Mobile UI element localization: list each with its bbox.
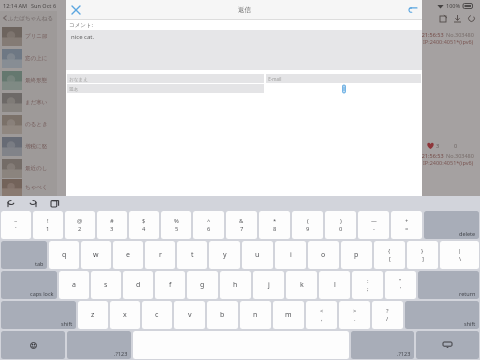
button[interactable]: 最終形態 <box>0 69 57 91</box>
button[interactable]: y <box>209 241 240 269</box>
button[interactable]: < <box>306 301 337 329</box>
button[interactable]: h <box>220 271 251 299</box>
button[interactable]: d <box>123 271 153 299</box>
button[interactable]: tab <box>1 241 47 269</box>
button[interactable]: e <box>113 241 143 269</box>
button[interactable]: u <box>242 241 273 269</box>
button[interactable]: Download <box>450 11 464 25</box>
staticText: ^ <box>207 217 211 225</box>
staticText: . <box>354 315 356 323</box>
button[interactable]: r <box>145 241 175 269</box>
button[interactable]: w <box>81 241 111 269</box>
button[interactable]: g <box>187 271 218 299</box>
button[interactable]: ちゃべく <box>0 179 57 196</box>
button[interactable]: 增税に怒 <box>0 135 57 157</box>
button[interactable]: & <box>226 211 257 239</box>
button[interactable]: Emoji <box>1 331 65 359</box>
button[interactable]: ? <box>372 301 403 329</box>
button[interactable]: b <box>207 301 238 329</box>
button[interactable]: ^ <box>193 211 224 239</box>
button[interactable]: o <box>308 241 339 269</box>
button[interactable]: Redo <box>22 196 44 210</box>
button[interactable]: t <box>177 241 207 269</box>
button[interactable]: shift <box>405 301 479 329</box>
staticText: * <box>273 217 277 225</box>
staticText: | <box>458 247 462 255</box>
button[interactable]: } <box>407 241 438 269</box>
button[interactable]: Refresh <box>464 11 478 25</box>
button[interactable]: Undo <box>0 196 22 210</box>
button[interactable]: | <box>440 241 479 269</box>
button[interactable]: まだ寒い <box>0 91 57 113</box>
button[interactable]: q <box>49 241 79 269</box>
button[interactable]: のるとき <box>0 113 57 135</box>
staticText: ふたばちゃんねる <box>8 15 54 22</box>
button[interactable]: プリニ節 <box>0 25 57 47</box>
staticText: まだ寒い <box>25 99 48 106</box>
button[interactable]: l <box>319 271 350 299</box>
button[interactable]: : <box>352 271 383 299</box>
button[interactable]: @ <box>65 211 95 239</box>
button[interactable]: % <box>161 211 191 239</box>
button[interactable]: Paste <box>44 196 66 210</box>
button[interactable]: v <box>174 301 205 329</box>
staticText: ) <box>340 217 342 225</box>
staticText: c <box>155 310 159 320</box>
button[interactable]: Close <box>66 0 86 20</box>
button[interactable]: return <box>418 271 479 299</box>
staticText: No.303480 <box>446 152 474 159</box>
staticText: 04 21:56:53 <box>414 152 444 159</box>
button[interactable]: s <box>91 271 121 299</box>
button[interactable]: 最近のし <box>0 157 57 179</box>
button[interactable]: f <box>155 271 185 299</box>
button[interactable]: z <box>78 301 108 329</box>
button[interactable]: 窓の上に <box>0 47 57 69</box>
button[interactable]: caps lock <box>1 271 57 299</box>
button[interactable]: + <box>391 211 422 239</box>
button[interactable]: Send <box>402 0 422 20</box>
button[interactable]: i <box>275 241 306 269</box>
button[interactable]: おなまえ <box>67 74 264 83</box>
button[interactable]: { <box>374 241 405 269</box>
staticText: 題名 <box>67 86 79 92</box>
button[interactable]: ! <box>33 211 63 239</box>
button[interactable]: a <box>59 271 89 299</box>
button[interactable]: ) <box>325 211 356 239</box>
button[interactable]: $ <box>129 211 159 239</box>
button[interactable]: ( <box>292 211 323 239</box>
staticText: 窓の上に <box>25 55 48 62</box>
staticText: ] <box>422 255 424 263</box>
button[interactable]: # <box>97 211 127 239</box>
staticText: d <box>136 280 141 290</box>
button[interactable]: " <box>385 271 416 299</box>
button[interactable]: j <box>253 271 284 299</box>
button[interactable]: Compose <box>436 11 450 25</box>
staticText: のるとき <box>25 121 48 128</box>
button[interactable]: .?123 <box>67 331 131 359</box>
button[interactable]: * <box>259 211 290 239</box>
button[interactable]: Hide keyboard <box>416 331 479 359</box>
button[interactable]: ~ <box>1 211 31 239</box>
button[interactable]: m <box>273 301 304 329</box>
staticText: / <box>386 315 389 323</box>
staticText: 最終形態 <box>25 77 47 84</box>
button[interactable]: k <box>286 271 317 299</box>
button[interactable]: shift <box>1 301 76 329</box>
button[interactable]: E-mail <box>266 74 421 83</box>
staticText: nice cat. <box>71 33 95 41</box>
button[interactable]: > <box>339 301 370 329</box>
button[interactable]: delete <box>424 211 479 239</box>
button[interactable]: p <box>341 241 372 269</box>
button[interactable]: Attach file <box>339 84 349 93</box>
button[interactable]: x <box>110 301 140 329</box>
staticText: b <box>220 310 225 320</box>
button[interactable]: — <box>358 211 389 239</box>
button[interactable]: c <box>142 301 172 329</box>
button[interactable]: 題名 <box>67 84 264 93</box>
staticText: r <box>159 250 162 260</box>
staticText: a <box>72 280 76 290</box>
button[interactable]: .?123 <box>351 331 414 359</box>
staticText: 3 <box>436 142 440 149</box>
button[interactable]: n <box>240 301 271 329</box>
